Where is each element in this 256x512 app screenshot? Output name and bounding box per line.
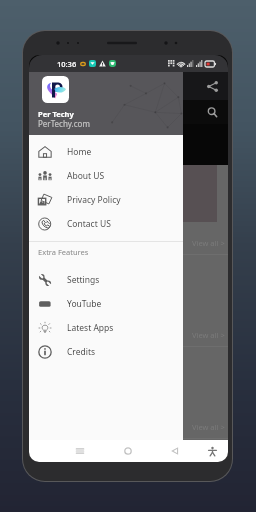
button[interactable]: Settings (29, 268, 183, 292)
staticText: Settings (67, 274, 100, 286)
staticText: PerTechy.com (38, 118, 90, 129)
button[interactable]: Share (201, 75, 223, 97)
button[interactable]: Privacy Policy (29, 188, 183, 212)
staticText: About US (67, 170, 105, 182)
button[interactable]: Home (29, 140, 183, 164)
staticText: YouTube (67, 298, 102, 310)
staticText: 10:36 (57, 59, 77, 69)
staticText: View all > (192, 422, 225, 432)
staticText: Per Techy (38, 109, 74, 119)
staticText: View all > (192, 238, 225, 248)
button[interactable]: Latest Apps (29, 316, 183, 340)
staticText: Latest Apps (67, 322, 114, 334)
button[interactable]: Home (118, 441, 138, 461)
button[interactable]: Back (165, 441, 185, 461)
button[interactable]: Accessibility (202, 441, 222, 461)
staticText: Extra Features (38, 247, 89, 257)
button[interactable]: Search (201, 101, 223, 123)
staticText: View all > (192, 330, 225, 340)
staticText: Home (67, 146, 92, 158)
button[interactable]: Recent apps (70, 441, 90, 461)
button[interactable]: Contact US (29, 212, 183, 236)
staticText: Privacy Policy (67, 194, 121, 206)
staticText: Credits (67, 346, 96, 358)
staticText: Contact US (67, 218, 111, 230)
button[interactable]: YouTube (29, 292, 183, 316)
button[interactable]: About US (29, 164, 183, 188)
button[interactable]: Credits (29, 340, 183, 364)
